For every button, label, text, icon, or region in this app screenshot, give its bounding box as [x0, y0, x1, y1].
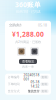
button[interactable]: 支付方式 — [5, 88, 51, 95]
staticText: 再来一单 — [22, 65, 34, 69]
staticText: 360账单 — [15, 0, 41, 9]
staticText: 下单时间 — [7, 82, 19, 86]
staticText: ¥1,288.00 — [12, 29, 44, 39]
staticText: 账单详情 · 已完成 — [16, 9, 40, 14]
staticText: 共2件商品 · 已签收 — [15, 40, 41, 44]
staticText: 20240518001 — [23, 73, 39, 81]
staticText: 订单编号 — [7, 75, 19, 79]
staticText: 微信支付 — [27, 89, 39, 93]
button[interactable]: 下单时间 — [5, 81, 51, 88]
staticText: 支付方式 — [7, 89, 19, 93]
staticText: 复制 — [41, 75, 47, 79]
staticText: 复制 — [41, 82, 47, 86]
staticText: 复制 — [41, 89, 47, 93]
button[interactable]: 查看物流 — [19, 59, 37, 64]
button[interactable]: 订单编号 — [5, 74, 51, 81]
staticText: 05-18 14:32 — [30, 80, 39, 88]
staticText: 查看物流 — [22, 59, 34, 63]
staticText: 交易成功 — [9, 23, 21, 27]
staticText: 05-18 — [38, 23, 47, 27]
